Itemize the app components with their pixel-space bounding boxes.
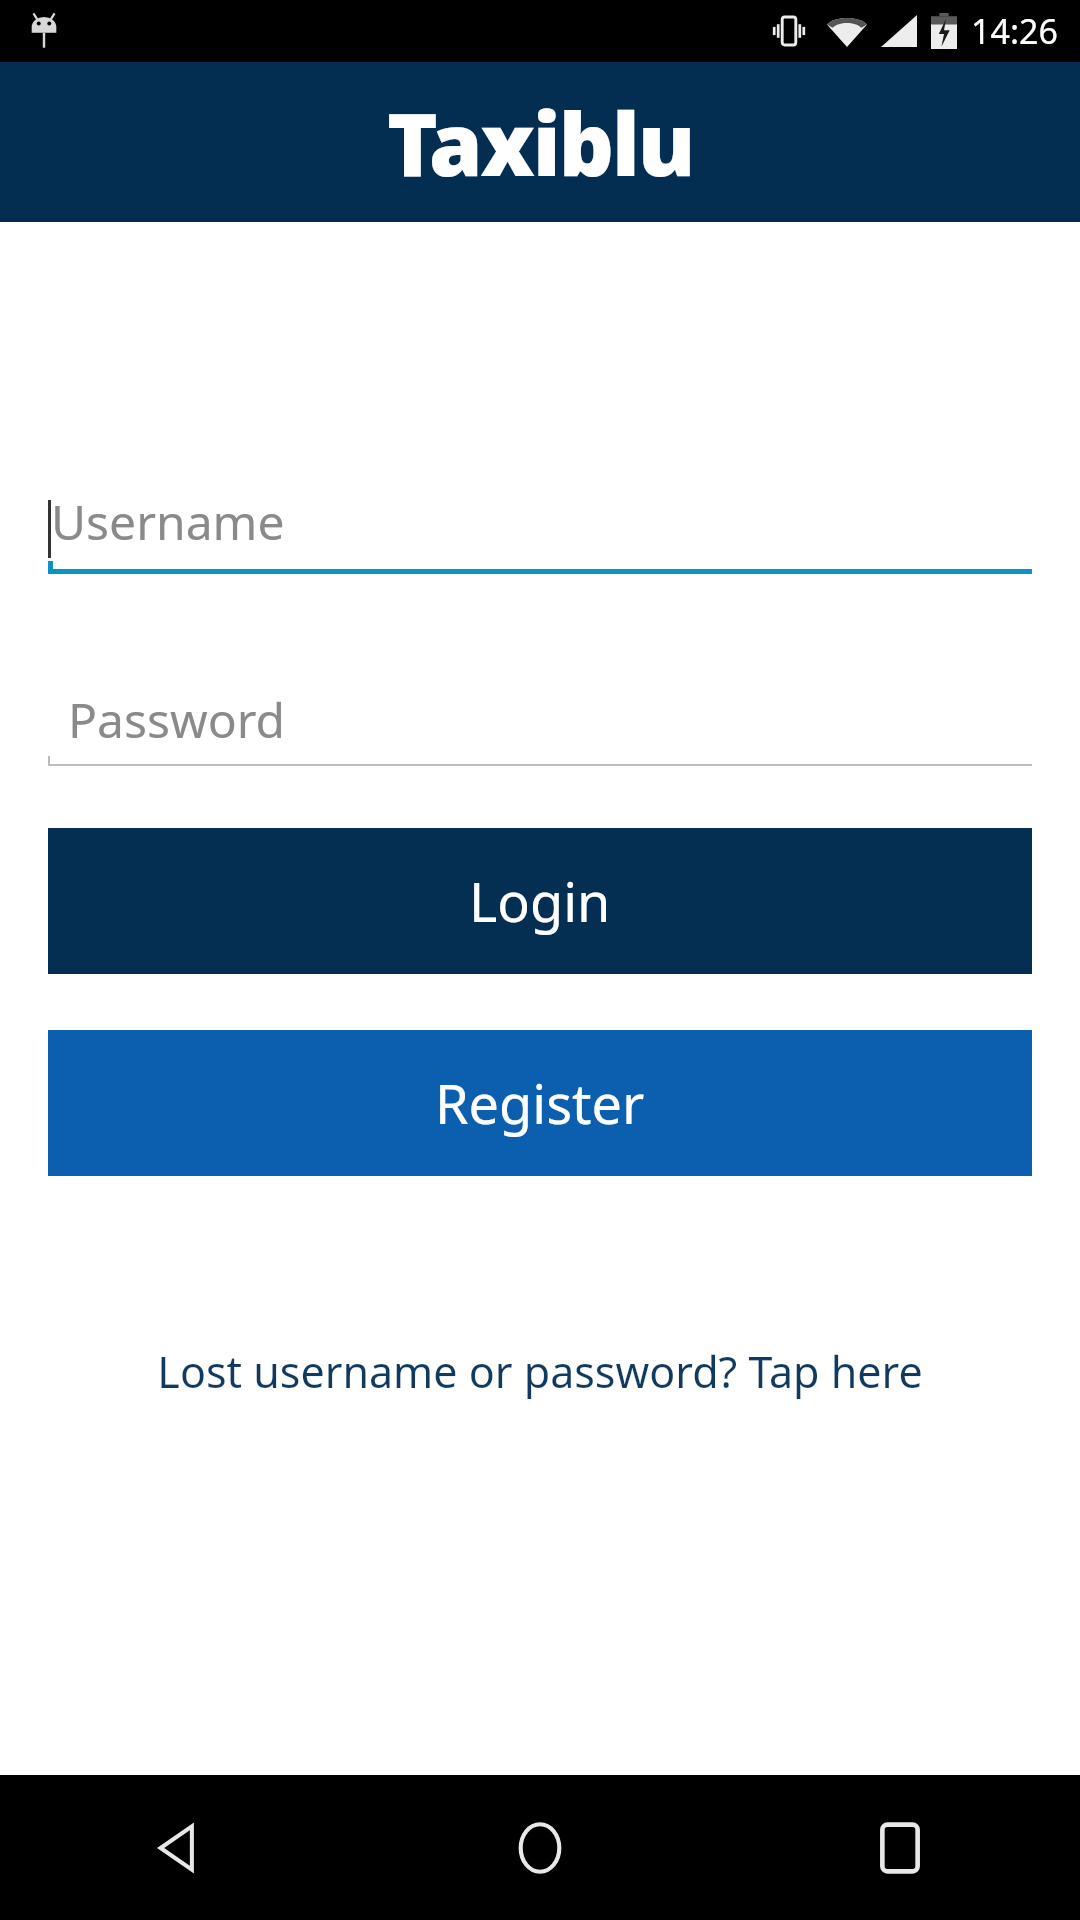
staticText: Register <box>435 1066 645 1140</box>
staticText: 14:26 <box>971 8 1058 54</box>
button[interactable]: Recent apps <box>720 1775 1080 1920</box>
button[interactable]: Login <box>48 828 1032 974</box>
staticText: Taxiblu <box>387 84 694 201</box>
button[interactable]: Home <box>360 1775 720 1920</box>
staticText: Password <box>68 687 286 752</box>
button[interactable]: Back <box>0 1775 360 1920</box>
staticText: Username <box>51 489 285 554</box>
staticText: Login <box>469 864 611 938</box>
button[interactable]: Password <box>48 666 1032 752</box>
button[interactable]: Register <box>48 1030 1032 1176</box>
button[interactable]: Username <box>48 462 1032 558</box>
staticText: Lost username or password? Tap here <box>157 1342 923 1401</box>
button[interactable]: Lost username or password? Tap here <box>48 1326 1032 1416</box>
